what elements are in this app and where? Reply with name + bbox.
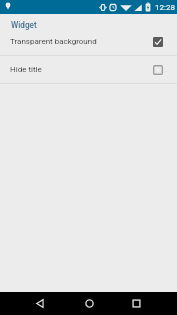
staticText: 12:28 xyxy=(155,3,175,12)
other: Checked xyxy=(153,37,163,47)
staticText: Hide title xyxy=(10,65,153,74)
staticText: Transparent background xyxy=(10,37,153,46)
button[interactable]: Transparent background xyxy=(0,28,177,55)
button[interactable]: Back xyxy=(16,292,63,315)
staticText: Widget xyxy=(11,20,37,30)
button[interactable]: Home xyxy=(63,292,116,315)
button[interactable]: Recent apps xyxy=(116,292,156,315)
other: Unchecked xyxy=(153,65,163,75)
button[interactable]: Hide title xyxy=(0,56,177,83)
